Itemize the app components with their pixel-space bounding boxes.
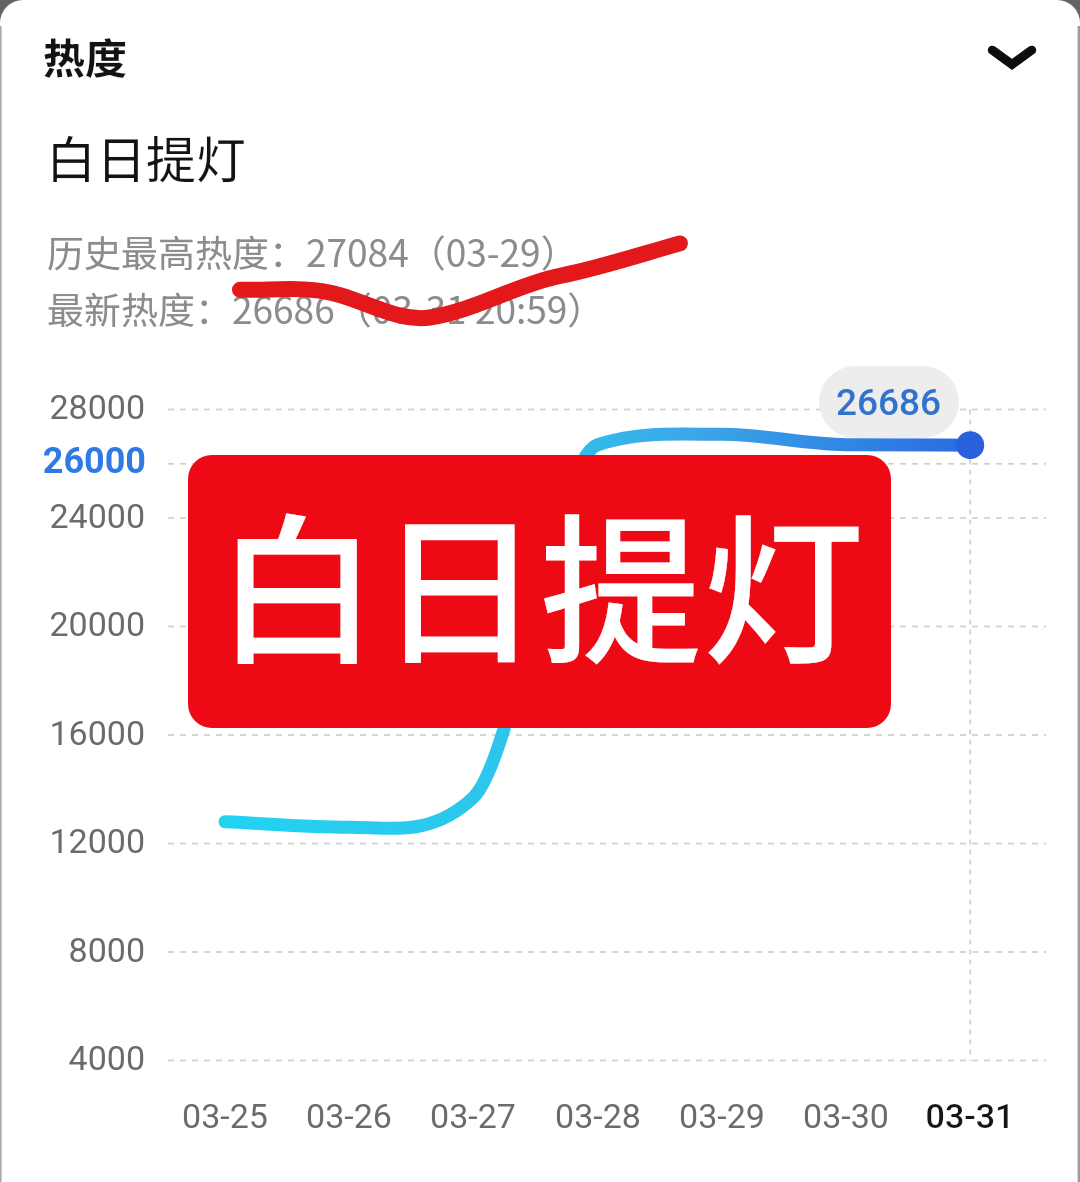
- staticText: 03-27: [393, 1096, 553, 1136]
- staticText: 历史最高热度：27084（03-29）: [47, 224, 578, 278]
- button[interactable]: 26686: [819, 366, 959, 438]
- staticText: 20000: [0, 604, 145, 644]
- staticText: 03-29: [642, 1096, 802, 1136]
- staticText: 03-26: [269, 1096, 429, 1136]
- staticText: 最新热度：26686（03-31 20:59）: [47, 281, 605, 335]
- staticText: 12000: [0, 821, 145, 861]
- staticText: 26000: [0, 440, 146, 482]
- staticText: 24000: [0, 496, 145, 536]
- staticText: 16000: [0, 713, 145, 753]
- staticText: 26686: [836, 381, 942, 424]
- staticText: 28000: [0, 387, 145, 427]
- button[interactable]: Collapse: [968, 11, 1056, 99]
- staticText: 03-31: [890, 1096, 1050, 1136]
- staticText: 白日提灯: [216, 463, 864, 698]
- staticText: 03-25: [145, 1096, 305, 1136]
- staticText: 03-28: [518, 1096, 678, 1136]
- button[interactable]: 热度: [43, 25, 128, 86]
- staticText: 8000: [0, 930, 145, 970]
- staticText: 4000: [0, 1038, 145, 1078]
- staticText: 03-30: [766, 1096, 926, 1136]
- staticText: 白日提灯: [46, 120, 246, 192]
